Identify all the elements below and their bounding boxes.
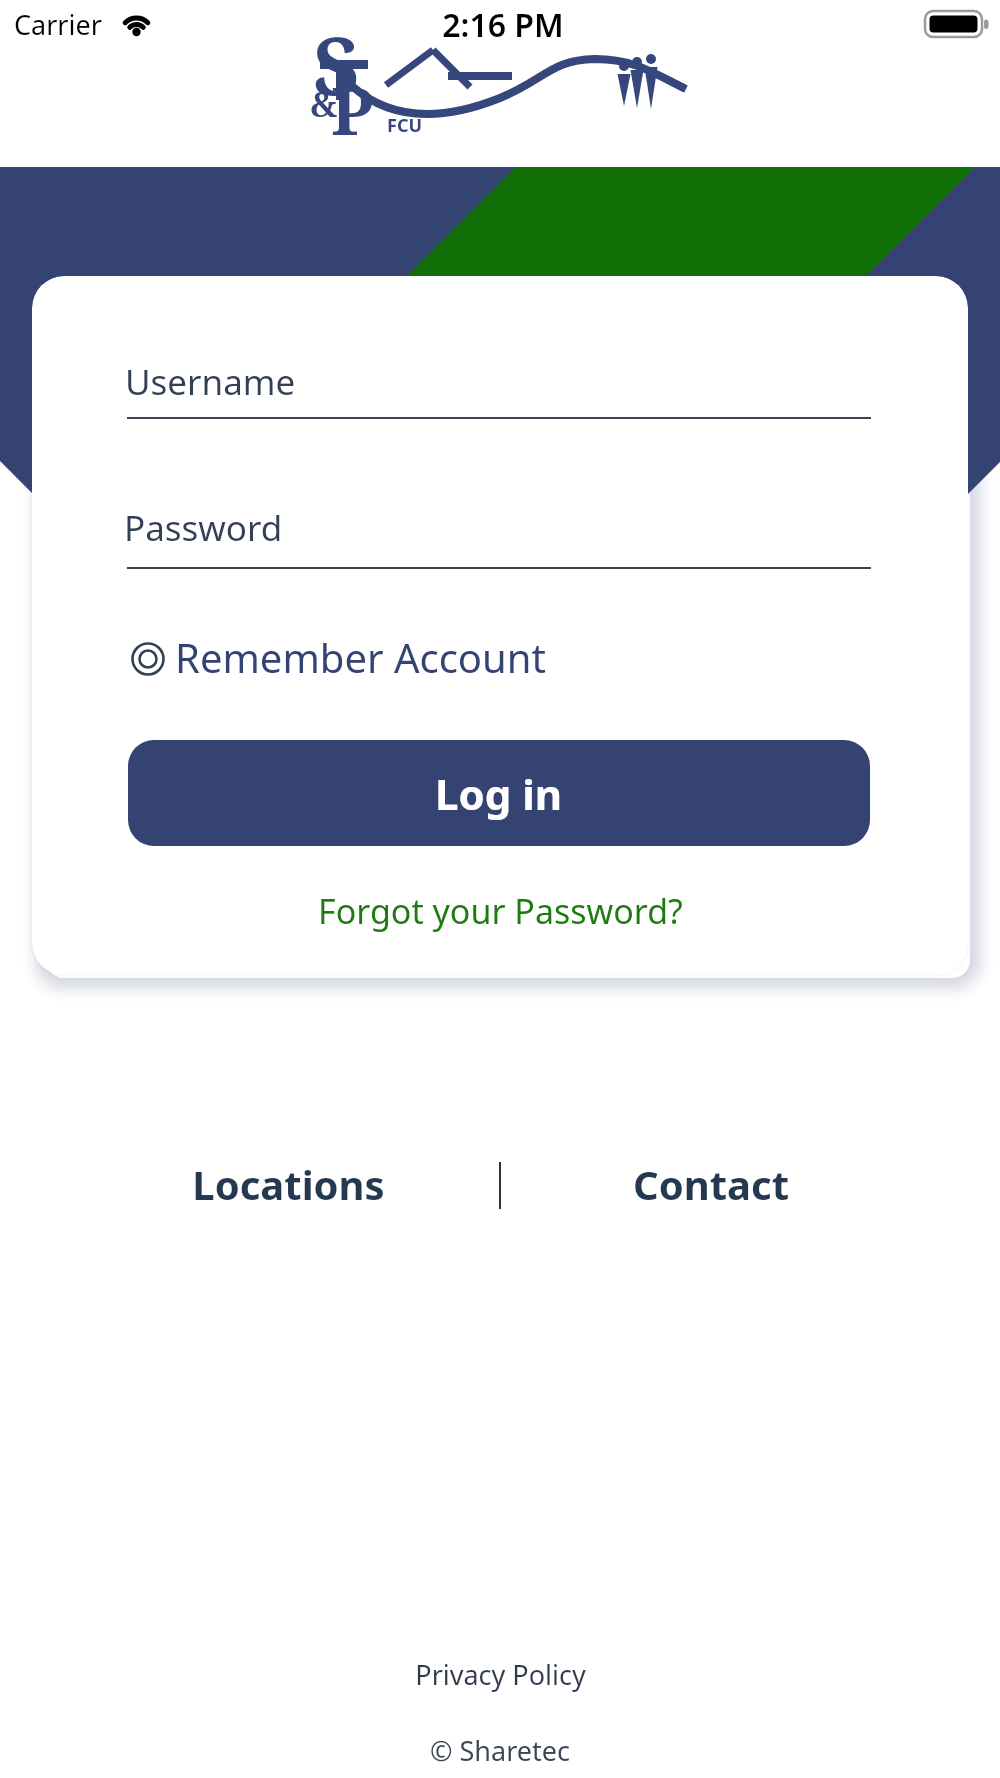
button[interactable]: Forgot your Password? <box>300 881 700 941</box>
button[interactable]: Contact <box>511 1157 911 1211</box>
button[interactable]: Remember Account <box>127 626 607 686</box>
staticText: Username <box>125 358 296 406</box>
staticText: Carrier <box>14 6 102 43</box>
button[interactable]: Locations <box>88 1157 488 1211</box>
staticText: Forgot your Password? <box>318 888 683 934</box>
staticText: Privacy Policy <box>415 1656 586 1693</box>
staticText: © Sharetec <box>430 1732 570 1769</box>
staticText: FCU <box>387 113 423 138</box>
staticText: Remember Account <box>175 630 546 684</box>
staticText: Password <box>124 504 283 552</box>
staticText: P <box>331 64 374 154</box>
button[interactable]: Log in <box>128 740 870 846</box>
staticText: Locations <box>192 1157 385 1211</box>
staticText: Log in <box>435 765 563 822</box>
staticText: & <box>310 81 338 127</box>
staticText: S <box>313 9 360 118</box>
button[interactable]: Password <box>127 494 871 562</box>
staticText: Contact <box>633 1157 789 1211</box>
button[interactable]: Privacy Policy <box>300 1656 700 1693</box>
staticText: 2:16 PM <box>442 3 564 47</box>
button[interactable]: Username <box>127 348 871 416</box>
